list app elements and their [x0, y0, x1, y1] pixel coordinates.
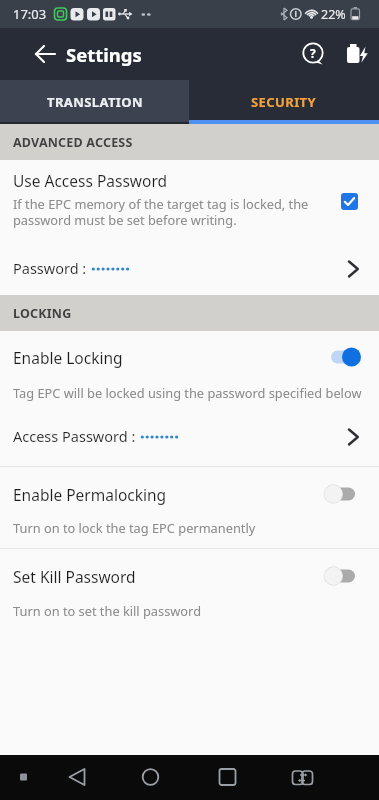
button[interactable]: [323, 566, 361, 586]
button[interactable]: Use Access Password: [0, 160, 379, 240]
button[interactable]: TRANSLATION: [0, 80, 189, 124]
button[interactable]: [284, 759, 320, 795]
staticText: Enable Locking: [13, 347, 323, 368]
staticText: Password :: [13, 258, 91, 278]
staticText: Set Kill Password: [13, 566, 323, 587]
button[interactable]: [323, 484, 361, 504]
staticText: 17:03: [13, 5, 47, 23]
staticText: 22%: [321, 6, 346, 23]
button[interactable]: Enable Permalocking: [0, 469, 379, 519]
button[interactable]: [209, 759, 245, 795]
staticText: Turn on to lock the tag EPC permanently: [13, 519, 256, 536]
button[interactable]: ?: [296, 37, 330, 71]
staticText: Tag EPC will be locked using the passwor…: [13, 384, 362, 401]
button[interactable]: [59, 759, 95, 795]
button[interactable]: Set Kill Password: [0, 551, 379, 601]
staticText: Access Password :: [13, 426, 140, 446]
staticText: Use Access Password: [13, 170, 168, 191]
staticText: Turn on to set the kill password: [13, 602, 202, 619]
staticText: Enable Permalocking: [13, 484, 323, 505]
button[interactable]: [340, 38, 372, 70]
button[interactable]: [5, 759, 41, 795]
staticText: ADVANCED ACCESS: [13, 134, 133, 151]
button[interactable]: [341, 193, 358, 210]
button[interactable]: SECURITY: [189, 80, 379, 124]
button[interactable]: Enable Locking: [0, 331, 379, 383]
staticText: TRANSLATION: [47, 93, 143, 111]
staticText: ?: [310, 45, 316, 61]
staticText: Settings: [66, 42, 142, 67]
button[interactable]: [0, 28, 52, 80]
staticText: LOCKING: [13, 305, 72, 322]
button[interactable]: Password :: [0, 240, 379, 295]
button[interactable]: Access Password :: [0, 405, 379, 466]
staticText: SECURITY: [251, 93, 317, 111]
button[interactable]: [132, 759, 168, 795]
button[interactable]: [323, 347, 361, 367]
staticText: If the EPC memory of the target tag is l…: [13, 195, 309, 229]
